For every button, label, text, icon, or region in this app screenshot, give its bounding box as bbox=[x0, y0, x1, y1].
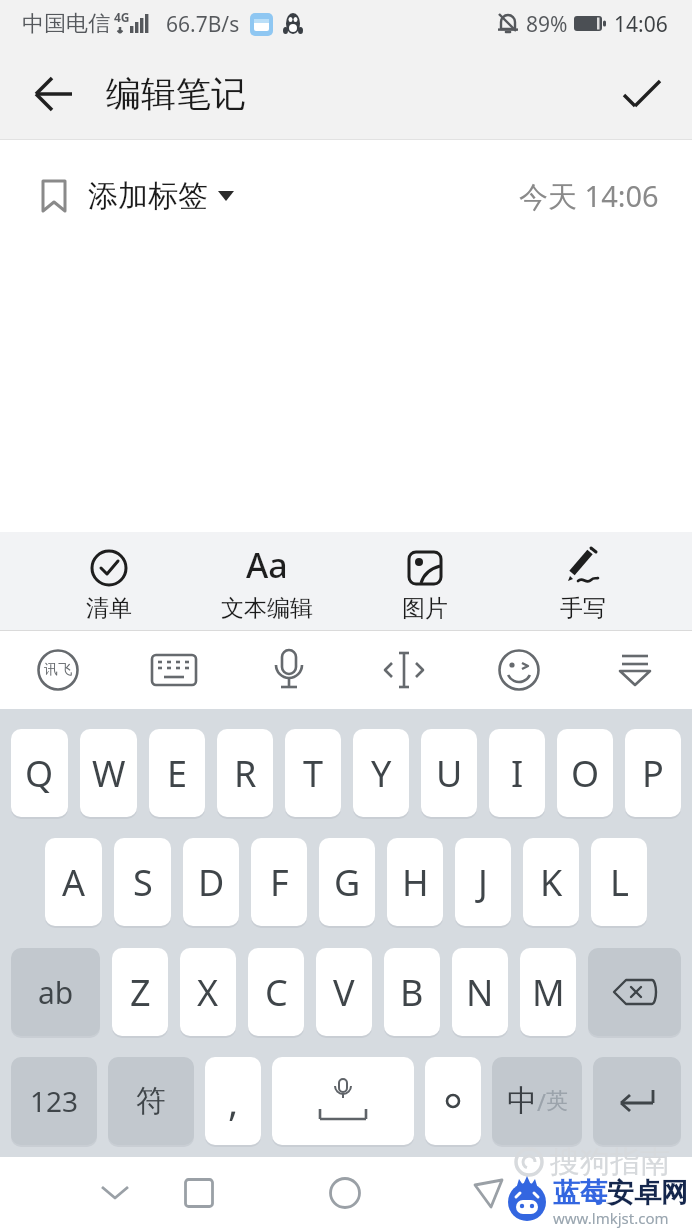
button[interactable]: X bbox=[180, 948, 236, 1036]
button[interactable]: 图片 bbox=[346, 532, 504, 630]
staticText: E bbox=[167, 749, 188, 798]
button[interactable] bbox=[184, 1178, 214, 1208]
staticText: 14:06 bbox=[614, 10, 668, 39]
button[interactable]: Q bbox=[11, 729, 68, 817]
staticText: I bbox=[511, 749, 524, 798]
staticText: L bbox=[610, 858, 629, 907]
staticText: N bbox=[466, 968, 494, 1017]
staticText: J bbox=[478, 858, 488, 907]
staticText: R bbox=[234, 749, 257, 798]
staticText: 123 bbox=[30, 1082, 79, 1120]
staticText: 图片 bbox=[402, 594, 448, 623]
button[interactable]: T bbox=[285, 729, 341, 817]
button[interactable]: J bbox=[455, 838, 511, 926]
button[interactable]: 中 bbox=[492, 1057, 582, 1145]
button[interactable]: 讯飞 bbox=[0, 631, 115, 709]
button[interactable]: C bbox=[248, 948, 304, 1036]
staticText: 手写 bbox=[560, 594, 606, 623]
staticText: 英 bbox=[546, 1087, 568, 1115]
staticText: S bbox=[133, 858, 153, 907]
staticText: 蓝莓 bbox=[553, 1176, 607, 1210]
staticText: M bbox=[532, 968, 565, 1017]
staticText: 文本编辑 bbox=[221, 594, 313, 623]
button[interactable] bbox=[16, 48, 92, 140]
button[interactable]: 符 bbox=[108, 1057, 194, 1145]
staticText: 4G bbox=[114, 9, 130, 25]
button[interactable] bbox=[96, 1181, 134, 1207]
staticText: U bbox=[436, 749, 463, 798]
staticText: Z bbox=[130, 968, 151, 1017]
button[interactable] bbox=[329, 1177, 361, 1209]
button[interactable]: 手写 bbox=[504, 532, 662, 630]
staticText: 编辑笔记 bbox=[106, 72, 246, 116]
button[interactable]: E bbox=[149, 729, 205, 817]
button[interactable] bbox=[472, 1177, 504, 1209]
staticText: V bbox=[333, 968, 355, 1017]
staticText: P bbox=[642, 749, 664, 798]
button[interactable]: A bbox=[45, 838, 102, 926]
button[interactable]: O bbox=[557, 729, 613, 817]
button[interactable]: ab bbox=[11, 948, 100, 1036]
button[interactable]: W bbox=[80, 729, 137, 817]
button[interactable]: Z bbox=[112, 948, 168, 1036]
staticText: 今天 14:06 bbox=[519, 176, 659, 216]
button[interactable]: H bbox=[387, 838, 443, 926]
button[interactable]: D bbox=[183, 838, 239, 926]
button[interactable]: V bbox=[316, 948, 372, 1036]
staticText: F bbox=[270, 858, 289, 907]
button[interactable] bbox=[346, 631, 461, 709]
button[interactable] bbox=[116, 631, 231, 709]
button[interactable] bbox=[231, 631, 346, 709]
button[interactable]: P bbox=[625, 729, 681, 817]
staticText: 中国电信 bbox=[22, 10, 110, 38]
button[interactable]: Aa bbox=[188, 532, 346, 630]
button[interactable] bbox=[588, 948, 681, 1036]
button[interactable]: 清单 bbox=[30, 532, 188, 630]
staticText: 搜狗指南 bbox=[550, 1143, 670, 1181]
staticText: Aa bbox=[246, 542, 288, 586]
button[interactable] bbox=[593, 1057, 681, 1145]
staticText: / bbox=[537, 1085, 546, 1118]
button[interactable]: Y bbox=[353, 729, 409, 817]
button[interactable]: N bbox=[452, 948, 508, 1036]
staticText: 中 bbox=[507, 1082, 537, 1120]
button[interactable]: M bbox=[520, 948, 576, 1036]
staticText: O bbox=[571, 749, 600, 798]
staticText: 89% bbox=[526, 10, 568, 39]
staticText: W bbox=[92, 749, 126, 798]
staticText: C bbox=[265, 968, 288, 1017]
button[interactable] bbox=[577, 631, 692, 709]
button[interactable]: K bbox=[523, 838, 579, 926]
staticText: , bbox=[228, 1075, 239, 1127]
button[interactable]: U bbox=[421, 729, 477, 817]
staticText: www.lmkjst.com bbox=[553, 1208, 669, 1228]
button[interactable]: I bbox=[489, 729, 545, 817]
button[interactable]: S bbox=[114, 838, 171, 926]
staticText: B bbox=[400, 968, 424, 1017]
staticText: Q bbox=[25, 749, 54, 798]
button[interactable]: L bbox=[591, 838, 647, 926]
button[interactable]: 添加标签 bbox=[40, 177, 234, 215]
staticText: 安卓网 bbox=[607, 1176, 688, 1210]
staticText: X bbox=[197, 968, 219, 1017]
staticText: Y bbox=[371, 749, 392, 798]
staticText: 添加标签 bbox=[88, 177, 208, 215]
staticText: 符 bbox=[136, 1082, 166, 1120]
button[interactable]: , bbox=[205, 1057, 261, 1145]
button[interactable] bbox=[425, 1057, 481, 1145]
staticText: A bbox=[62, 858, 86, 907]
staticText: K bbox=[540, 858, 563, 907]
staticText: H bbox=[402, 858, 429, 907]
staticText: D bbox=[198, 858, 225, 907]
button[interactable]: R bbox=[217, 729, 273, 817]
staticText: G bbox=[334, 858, 361, 907]
button[interactable]: 123 bbox=[11, 1057, 97, 1145]
button[interactable] bbox=[604, 56, 680, 132]
button[interactable]: F bbox=[251, 838, 307, 926]
staticText: 66.7B/s bbox=[166, 10, 240, 39]
button[interactable]: B bbox=[384, 948, 440, 1036]
staticText: ab bbox=[38, 972, 74, 1013]
button[interactable] bbox=[272, 1057, 414, 1145]
button[interactable] bbox=[461, 631, 576, 709]
button[interactable]: G bbox=[319, 838, 375, 926]
